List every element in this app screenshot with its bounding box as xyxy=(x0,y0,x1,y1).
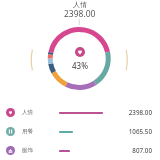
staticText: 用餐 xyxy=(22,128,34,135)
staticText: 服饰 xyxy=(22,147,34,154)
button[interactable]: 用餐 xyxy=(0,122,160,141)
button[interactable]: 人情 xyxy=(0,103,160,122)
staticText: 43% xyxy=(72,60,88,71)
button[interactable]: 服饰 xyxy=(0,141,160,160)
staticText: 人情 xyxy=(22,109,34,116)
staticText: 2398.00 xyxy=(64,8,96,20)
staticText: 807.00 xyxy=(122,146,152,155)
staticText: 2398.00 xyxy=(122,108,152,117)
staticText: 1065.50 xyxy=(122,127,152,136)
staticText: 人情 xyxy=(73,0,87,9)
